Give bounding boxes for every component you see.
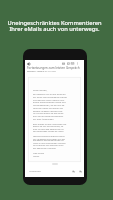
button[interactable]: Antworten <box>29 168 45 172</box>
staticText: gestern Abend 21:12 Uhr <box>27 69 56 72</box>
staticText: Fortsetzungen zum letzten Gespräch <box>27 66 80 70</box>
staticText: Antworten <box>29 169 41 172</box>
staticText: Martin <box>33 155 40 158</box>
button[interactable]: Delete <box>66 61 71 66</box>
staticText: mit allen Änderungen. <box>33 118 54 121</box>
staticText: weitere Vorgehen relevant sind. <box>33 110 63 113</box>
staticText: Viele Grüße <box>33 152 44 155</box>
staticText: mit Ihnen vom vergangenen Freitag <box>33 96 67 99</box>
staticText: der bekannten Nummer. <box>33 147 56 150</box>
staticText: selbstverständlich jederzeit gerne <box>33 135 65 138</box>
staticText: Bitte prüfen Sie die Unterlagen und <box>33 123 67 126</box>
button[interactable]: More options <box>75 61 80 66</box>
staticText: zusammenfassen, die wir dort be- <box>33 104 65 107</box>
button[interactable]: Reply all <box>78 168 83 174</box>
button[interactable]: Reply <box>71 168 76 174</box>
staticText: alles so passt wie besprochen ist. <box>33 128 65 131</box>
button[interactable]: Back <box>26 61 32 67</box>
staticText: Ihnen in den kommenden Wochen. <box>33 142 67 145</box>
button[interactable]: Mark unread <box>70 61 75 66</box>
staticText: Sie erreichen uns jederzeit unter <box>33 144 64 147</box>
staticText: bart das aktualisierte Dokument <box>33 115 64 118</box>
staticText: Ihrer eMails auch von unterwegs. <box>9 25 100 33</box>
staticText: Für Rückfragen stehen wir Ihnen <box>33 130 64 133</box>
staticText: und möchten Ihnen hiermit noch <box>33 99 65 102</box>
staticText: Guten Morgen, <box>33 89 48 92</box>
button[interactable]: Archive <box>61 61 66 66</box>
staticText: sprochen haben und die für das <box>33 107 63 110</box>
staticText: Uneingeschränktes Kommentieren <box>7 19 102 27</box>
staticText: einmal die wichtigsten Punkte kurz <box>33 101 66 104</box>
staticText: die weitere Zusammenarbeit mit <box>33 139 64 142</box>
staticText: geben Sie uns kurz Bescheid, ob <box>33 125 64 128</box>
staticText: Im Anhang finden Sie wie verein- <box>33 112 64 115</box>
staticText: wir beziehen uns auf das Gespräch <box>33 93 66 96</box>
staticText: zur Verfügung und freuen uns auf <box>33 138 65 141</box>
button[interactable]: Show quoted text <box>52 163 58 165</box>
